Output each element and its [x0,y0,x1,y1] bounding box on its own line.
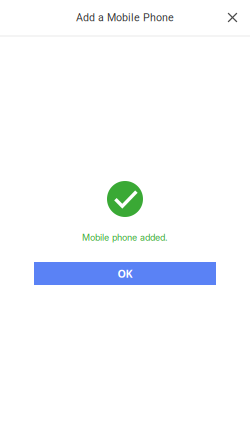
staticText: Add a Mobile Phone [76,11,174,24]
button[interactable]: OK [34,262,216,285]
staticText: OK [117,266,132,281]
button[interactable]: Close [215,0,250,35]
staticText: Mobile phone added. [82,232,168,243]
